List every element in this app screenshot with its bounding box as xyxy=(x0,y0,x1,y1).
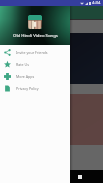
staticText: Privacy Policy xyxy=(16,86,39,91)
staticText: Old Hindi Video Songs xyxy=(13,32,58,38)
staticText: Invite your Friends xyxy=(16,50,48,55)
button[interactable]: Invite your Friends xyxy=(0,46,70,58)
button[interactable]: Rate Us xyxy=(0,58,70,70)
staticText: 4:34 xyxy=(92,0,101,6)
button[interactable]: Recents xyxy=(75,172,85,182)
staticText: More Apps xyxy=(16,74,35,79)
button[interactable]: Privacy Policy xyxy=(0,82,70,94)
button[interactable]: More Apps xyxy=(0,70,70,82)
staticText: Rate Us xyxy=(16,62,29,67)
